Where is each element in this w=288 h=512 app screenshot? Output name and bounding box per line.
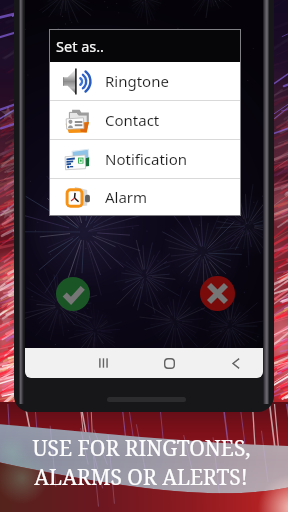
button[interactable]: Accept [56, 277, 90, 311]
staticText: Ringtone [105, 71, 169, 91]
button[interactable]: Alarm [50, 179, 240, 215]
staticText: USE FOR RINGTONES, [32, 434, 251, 463]
staticText: Contact [105, 110, 160, 130]
button[interactable]: Contact [50, 101, 240, 139]
button[interactable]: Ringtone [50, 62, 240, 100]
staticText: Set as.. [56, 36, 104, 56]
button[interactable]: Home [154, 348, 184, 378]
staticText: Notification [105, 149, 188, 169]
button[interactable]: Back [221, 348, 251, 378]
button[interactable]: Cancel [200, 276, 235, 311]
staticText: Alarm [105, 187, 148, 207]
button[interactable]: Notification [50, 140, 240, 178]
staticText: ALARMS OR ALERTS! [34, 463, 248, 492]
button[interactable]: Recents [88, 348, 118, 378]
